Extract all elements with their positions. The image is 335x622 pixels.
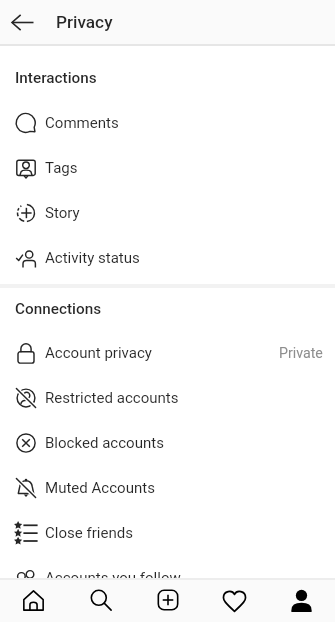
staticText: Activity status [45, 249, 140, 267]
button[interactable]: Accounts you follow [0, 555, 335, 600]
button[interactable]: Close friends [0, 510, 335, 555]
staticText: Tags [45, 159, 78, 177]
staticText: Accounts you follow [45, 569, 181, 587]
staticText: Story [45, 204, 80, 222]
staticText: Blocked accounts [45, 434, 164, 452]
button[interactable]: Profile [268, 580, 335, 622]
staticText: Privacy [56, 12, 113, 32]
button[interactable]: Activity [201, 580, 268, 622]
button[interactable]: Restricted accounts [0, 375, 335, 420]
button[interactable]: Muted Accounts [0, 465, 335, 510]
button[interactable]: Search [67, 580, 134, 622]
staticText: Muted Accounts [45, 479, 155, 497]
button[interactable]: Create [134, 580, 201, 622]
staticText: Interactions [15, 69, 97, 87]
button[interactable]: Home [0, 580, 67, 622]
staticText: Account privacy [45, 344, 152, 362]
staticText: Private [279, 345, 323, 362]
staticText: Close friends [45, 524, 134, 542]
button[interactable]: Blocked accounts [0, 420, 335, 465]
button[interactable]: Account privacy [0, 330, 335, 375]
staticText: Connections [15, 300, 102, 318]
button[interactable]: Story [0, 190, 335, 235]
button[interactable]: Comments [0, 100, 335, 145]
button[interactable]: Tags [0, 145, 335, 190]
button[interactable]: Activity status [0, 235, 335, 280]
staticText: Restricted accounts [45, 389, 179, 407]
staticText: Comments [45, 114, 119, 132]
button[interactable]: Back [5, 5, 39, 39]
